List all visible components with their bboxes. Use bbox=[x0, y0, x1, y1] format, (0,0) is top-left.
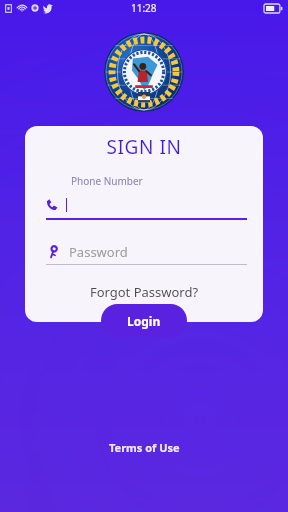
button[interactable]: Login bbox=[101, 304, 187, 337]
staticText: Password bbox=[69, 243, 128, 261]
staticText: Terms of Use bbox=[109, 440, 180, 455]
staticText: SIGN IN bbox=[25, 134, 263, 160]
staticText: Login bbox=[127, 313, 161, 329]
button[interactable] bbox=[25, 192, 263, 218]
button[interactable]: Terms of Use bbox=[99, 436, 190, 459]
button[interactable]: Forgot Password? bbox=[25, 281, 263, 303]
button[interactable]: Password bbox=[25, 240, 263, 264]
staticText: Phone Number bbox=[71, 174, 143, 188]
staticText: Forgot Password? bbox=[25, 283, 263, 301]
staticText: 11:28 bbox=[131, 1, 157, 15]
